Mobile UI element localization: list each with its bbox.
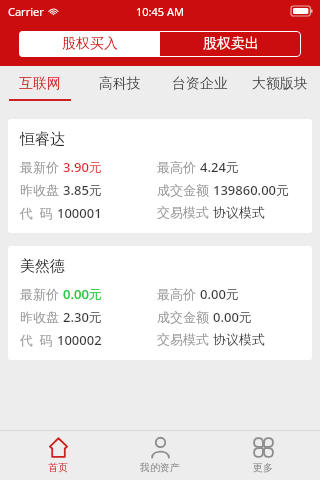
staticText: 协议模式 [213,331,265,347]
button[interactable]: 互联网 [0,66,80,106]
staticText: 恒睿达 [20,130,65,149]
staticText: 100002 [57,331,102,349]
staticText: 协议模式 [213,204,265,220]
staticText: 3.85元 [63,181,102,199]
staticText: 100001 [57,204,102,222]
staticText: 股权卖出 [203,35,259,53]
button[interactable]: 台资企业 [160,66,240,106]
staticText: 美然德 [20,257,65,276]
staticText: 代 码 [20,331,53,349]
staticText: 高科技 [99,75,141,93]
staticText: 最高价 [157,286,196,302]
staticText: 互联网 [19,75,61,93]
staticText: 交易模式 [157,331,209,347]
staticText: Carrier [8,4,44,19]
staticText: 交易模式 [157,204,209,220]
staticText: 4.24元 [200,158,239,176]
staticText: 代 码 [20,204,53,222]
button[interactable]: 我的资产 [115,431,205,480]
staticText: 更多 [253,461,273,474]
staticText: 我的资产 [140,461,180,474]
staticText: 0.00元 [63,285,102,303]
staticText: 成交金额 [157,309,209,325]
staticText: 最新价 [20,286,59,302]
staticText: 大额版块 [252,75,308,93]
staticText: 台资企业 [172,75,228,93]
staticText: 最新价 [20,159,59,175]
button[interactable]: 恒睿达 [8,119,312,233]
staticText: 0.00元 [213,308,252,326]
staticText: 昨收盘 [20,182,59,198]
staticText: 3.90元 [63,158,102,176]
button[interactable]: 更多 [218,431,308,480]
staticText: 10:45 AM [136,4,184,19]
button[interactable]: 股权卖出 [160,31,301,57]
staticText: 最高价 [157,159,196,175]
button[interactable]: 首页 [13,431,103,480]
button[interactable]: 大额版块 [240,66,320,106]
staticText: 成交金额 [157,182,209,198]
staticText: 139860.00元 [213,181,290,199]
button[interactable]: 高科技 [80,66,160,106]
staticText: 首页 [48,461,68,474]
button[interactable]: 股权买入 [19,31,160,57]
button[interactable]: 美然德 [8,246,312,360]
staticText: 0.00元 [200,285,239,303]
staticText: 昨收盘 [20,309,59,325]
staticText: 股权买入 [62,35,118,53]
staticText: 2.30元 [63,308,102,326]
